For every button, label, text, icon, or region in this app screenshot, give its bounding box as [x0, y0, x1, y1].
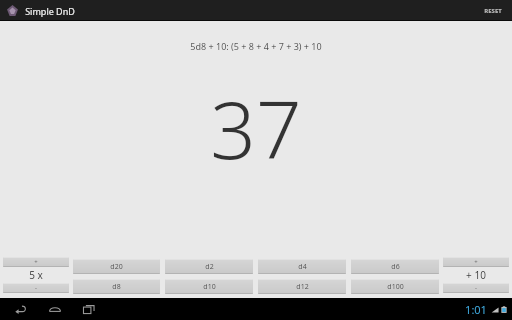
button[interactable]: d6 [351, 259, 439, 274]
button[interactable]: - [3, 283, 69, 293]
staticText: d2 [205, 262, 214, 272]
button[interactable]: + [443, 257, 509, 267]
staticText: 5d8 + 10: (5 + 8 + 4 + 7 + 3) + 10 [190, 40, 322, 52]
staticText: RESET [484, 7, 502, 15]
staticText: d4 [298, 262, 307, 272]
button[interactable]: d4 [258, 259, 346, 274]
staticText: d10 [203, 282, 216, 292]
button[interactable]: - [443, 283, 509, 293]
button[interactable]: d100 [351, 279, 439, 294]
staticText: d100 [387, 282, 404, 292]
button[interactable]: d10 [165, 279, 253, 294]
staticText: - [35, 284, 37, 292]
button[interactable]: d2 [165, 259, 253, 274]
staticText: d12 [296, 282, 309, 292]
button[interactable]: RESET [484, 7, 502, 15]
button[interactable]: d12 [258, 279, 346, 294]
button[interactable]: Recent apps [78, 298, 100, 320]
staticText: + [34, 258, 38, 266]
staticText: - [475, 284, 477, 292]
button[interactable]: Home [44, 298, 66, 320]
button[interactable]: Back [10, 298, 32, 320]
staticText: + [474, 258, 478, 266]
button[interactable]: d8 [73, 279, 160, 294]
staticText: + 10 [466, 268, 486, 282]
button[interactable]: d20 [73, 259, 160, 274]
staticText: d8 [112, 282, 121, 292]
staticText: Simple DnD [25, 5, 75, 17]
staticText: 1:01 [465, 302, 487, 317]
button[interactable]: + [3, 257, 69, 267]
staticText: d6 [391, 262, 400, 272]
other: App icon [6, 4, 19, 17]
staticText: 37 [210, 73, 302, 182]
staticText: 5 x [29, 268, 43, 282]
staticText: d20 [110, 262, 123, 272]
